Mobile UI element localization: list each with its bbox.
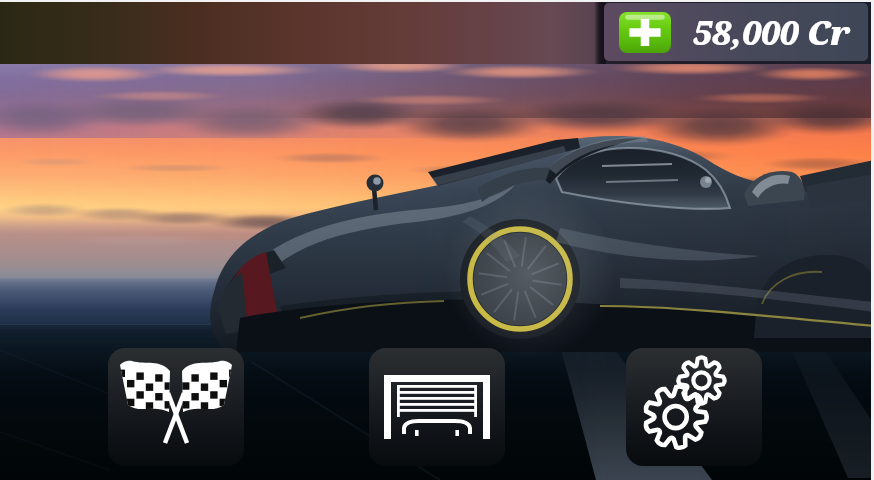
button[interactable]: Add credits [604,3,868,61]
button[interactable]: Settings [626,348,762,466]
button[interactable]: Garage [369,348,505,466]
button[interactable]: Race [108,348,244,466]
staticText: 58,000 Cr [693,10,851,55]
button[interactable]: Add credits [619,12,671,53]
